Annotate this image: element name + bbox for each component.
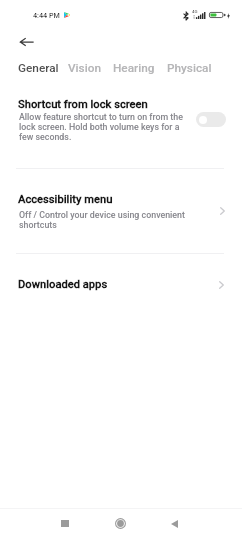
- staticText: Vision: [68, 61, 101, 75]
- button[interactable]: Physical: [160, 56, 219, 80]
- staticText: Allow feature shortcut to turn on from t…: [19, 112, 191, 142]
- button[interactable]: Hearing: [106, 56, 162, 80]
- button[interactable]: Downloaded apps: [0, 269, 242, 301]
- staticText: Shortcut from lock screen: [18, 98, 148, 111]
- button[interactable]: Vision: [61, 56, 108, 80]
- staticText: Off / Control your device using convenie…: [19, 210, 199, 230]
- button[interactable]: General: [11, 56, 66, 80]
- staticText: 4G: [192, 9, 198, 14]
- button[interactable]: Shortcut from lock screen toggle: [196, 112, 226, 127]
- button[interactable]: Back: [9, 24, 44, 59]
- button[interactable]: Shortcut from lock screen: [0, 82, 242, 168]
- staticText: Downloaded apps: [18, 278, 108, 291]
- staticText: Accessibility menu: [18, 193, 113, 206]
- button[interactable]: Accessibility menu: [0, 184, 242, 253]
- staticText: 4:44 PM: [33, 11, 60, 19]
- button[interactable]: Home: [103, 506, 138, 538]
- staticText: General: [18, 61, 59, 75]
- staticText: Physical: [167, 61, 212, 75]
- button[interactable]: Recent apps: [47, 506, 82, 538]
- staticText: Hearing: [113, 61, 155, 75]
- button[interactable]: Back: [157, 506, 192, 538]
